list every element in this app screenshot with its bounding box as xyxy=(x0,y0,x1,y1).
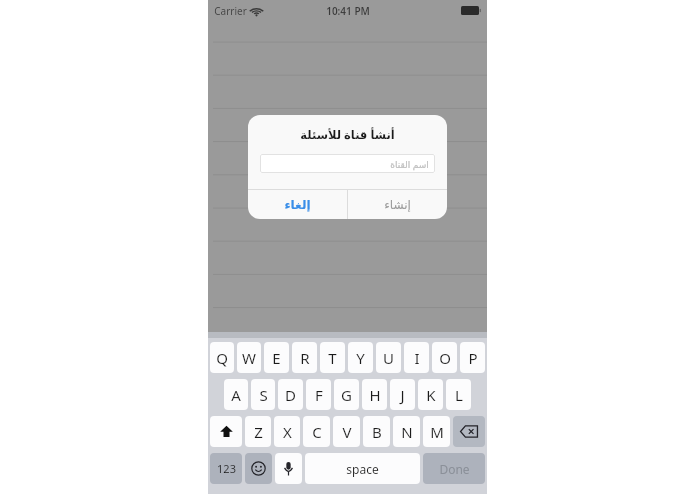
button[interactable]: M xyxy=(423,416,450,447)
button[interactable]: E xyxy=(264,342,289,373)
button[interactable]: S xyxy=(251,379,275,410)
staticText: Y xyxy=(356,348,365,368)
button[interactable]: N xyxy=(393,416,420,447)
staticText: G xyxy=(341,385,352,405)
staticText: C xyxy=(312,422,322,442)
staticText: K xyxy=(426,385,436,405)
button[interactable]: I xyxy=(404,342,429,373)
staticText: P xyxy=(468,348,478,368)
staticText: space xyxy=(346,461,379,477)
staticText: N xyxy=(401,422,413,442)
staticText: S xyxy=(259,385,268,405)
button[interactable]: L xyxy=(446,379,471,410)
button[interactable]: Backspace xyxy=(453,416,485,447)
button[interactable]: C xyxy=(303,416,330,447)
button[interactable]: Shift xyxy=(210,416,242,447)
staticText: M xyxy=(430,422,444,442)
staticText: D xyxy=(285,385,296,405)
staticText: إنشاء xyxy=(384,198,411,212)
button[interactable]: space xyxy=(305,453,420,484)
button[interactable]: T xyxy=(320,342,345,373)
button[interactable]: P xyxy=(460,342,485,373)
staticText: 10:41 PM xyxy=(326,4,370,18)
staticText: Carrier xyxy=(214,4,247,18)
staticText: V xyxy=(342,422,352,442)
button[interactable]: H xyxy=(362,379,387,410)
staticText: U xyxy=(383,348,394,368)
staticText: إلغاء xyxy=(284,198,311,212)
button[interactable]: اسم القناة xyxy=(260,154,435,173)
staticText: H xyxy=(369,385,381,405)
button[interactable]: B xyxy=(363,416,390,447)
staticText: O xyxy=(439,348,451,368)
staticText: Z xyxy=(254,422,263,442)
staticText: Done xyxy=(439,461,470,477)
staticText: Q xyxy=(216,348,228,368)
button[interactable]: O xyxy=(432,342,457,373)
staticText: X xyxy=(283,422,292,442)
button[interactable]: F xyxy=(306,379,331,410)
button[interactable]: Done xyxy=(423,453,485,484)
staticText: أنشأ قناة للأسئلة xyxy=(300,127,395,143)
staticText: T xyxy=(328,348,337,368)
staticText: R xyxy=(300,348,310,368)
staticText: A xyxy=(231,385,241,405)
staticText: I xyxy=(414,348,420,368)
staticText: J xyxy=(400,385,405,405)
staticText: L xyxy=(455,385,463,405)
button[interactable]: V xyxy=(333,416,360,447)
button[interactable]: 123 xyxy=(210,453,242,484)
staticText: اسم القناة xyxy=(390,158,429,170)
button[interactable]: إنشاء xyxy=(348,190,447,219)
button[interactable]: Dictation xyxy=(275,453,302,484)
button[interactable]: Z xyxy=(245,416,271,447)
button[interactable]: Q xyxy=(210,342,234,373)
button[interactable]: G xyxy=(334,379,359,410)
button[interactable]: X xyxy=(274,416,300,447)
staticText: E xyxy=(272,348,281,368)
button[interactable]: إلغاء xyxy=(248,190,347,219)
button[interactable]: R xyxy=(292,342,317,373)
staticText: W xyxy=(242,348,256,368)
button[interactable]: K xyxy=(418,379,443,410)
staticText: B xyxy=(372,422,382,442)
button[interactable]: Y xyxy=(348,342,373,373)
staticText: F xyxy=(315,385,323,405)
button[interactable]: J xyxy=(390,379,415,410)
button[interactable]: U xyxy=(376,342,401,373)
button[interactable]: W xyxy=(237,342,261,373)
staticText: 123 xyxy=(217,461,236,476)
button[interactable]: Emoji xyxy=(245,453,272,484)
button[interactable]: D xyxy=(278,379,303,410)
button[interactable]: A xyxy=(224,379,248,410)
